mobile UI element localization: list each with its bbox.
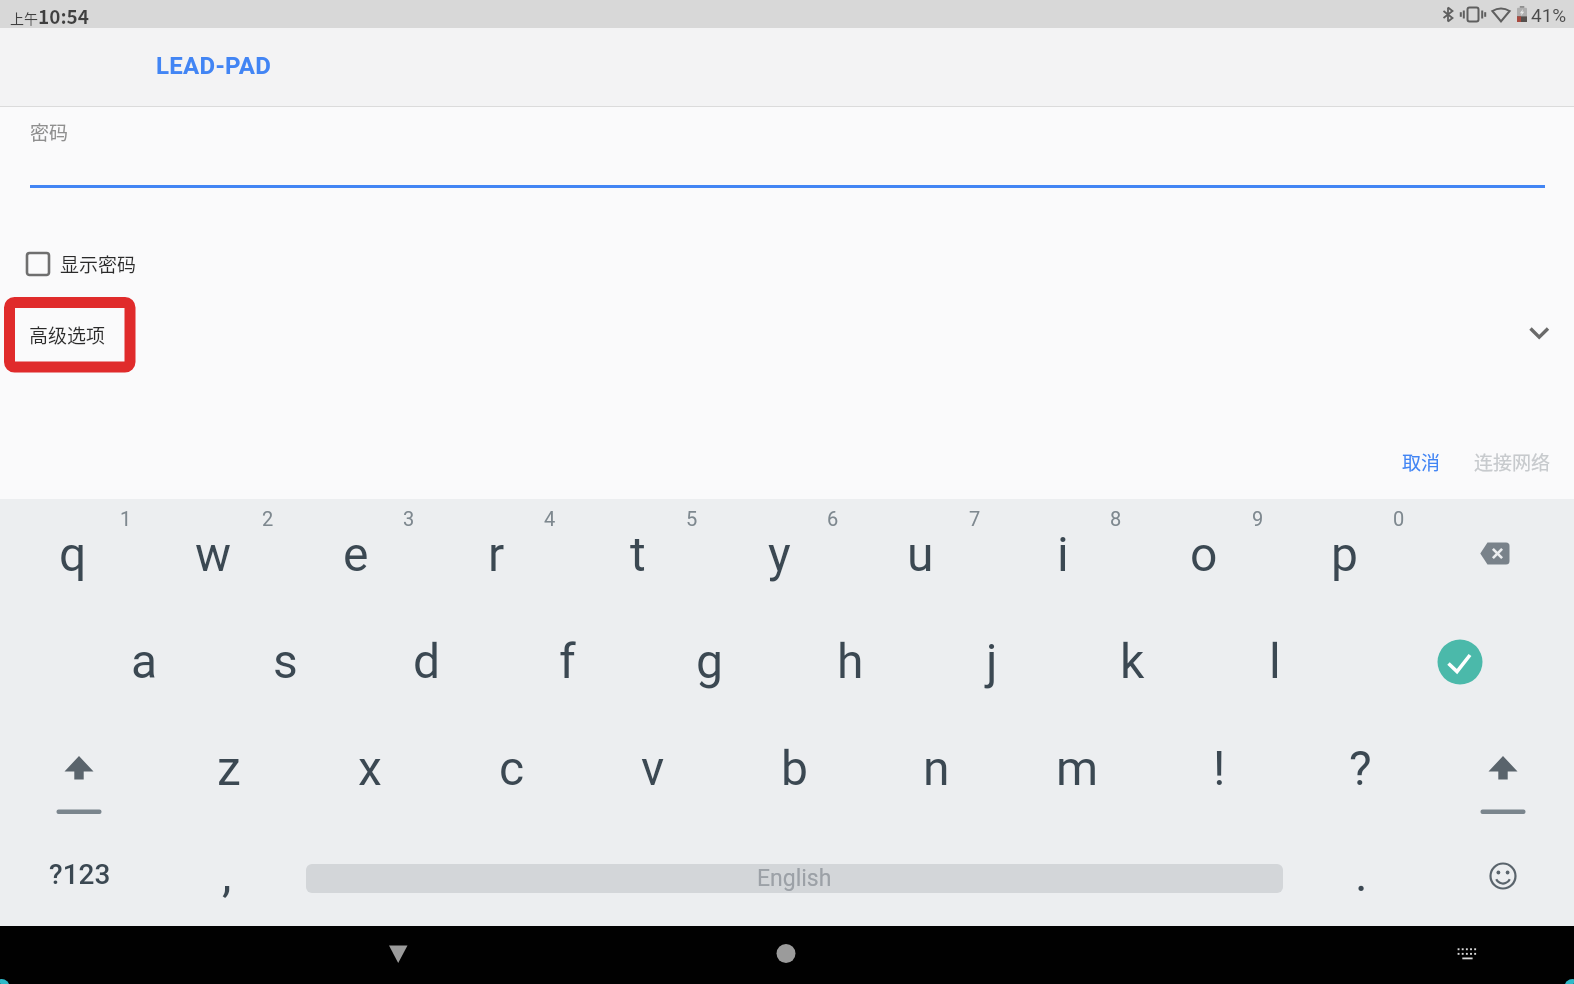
button[interactable]: m xyxy=(1007,714,1148,822)
staticText: LEAD-PAD xyxy=(156,52,272,80)
staticText: x xyxy=(358,740,382,796)
button[interactable] xyxy=(1420,500,1570,607)
button[interactable]: ! xyxy=(1149,714,1290,822)
staticText: 高级选项 xyxy=(29,321,106,349)
button[interactable]: . xyxy=(1296,822,1426,926)
staticText: English xyxy=(757,865,832,892)
button[interactable] xyxy=(1432,822,1574,926)
button[interactable]: 高级选项 xyxy=(29,321,106,349)
button[interactable]: i xyxy=(992,500,1133,607)
staticText: 6 xyxy=(827,507,839,530)
staticText: 0 xyxy=(1393,507,1405,530)
button[interactable]: English xyxy=(306,822,1283,926)
button[interactable]: 显示密码 xyxy=(27,247,157,281)
button[interactable]: u xyxy=(850,500,991,607)
button[interactable]: s xyxy=(215,607,356,714)
button[interactable]: , xyxy=(162,822,292,926)
button[interactable]: k xyxy=(1062,607,1203,714)
staticText: 密码 xyxy=(30,118,69,146)
button[interactable]: o xyxy=(1133,500,1274,607)
button[interactable]: a xyxy=(74,607,215,714)
button[interactable]: y xyxy=(709,500,850,607)
staticText: d xyxy=(413,633,441,689)
staticText: . xyxy=(1355,846,1368,902)
staticText: g xyxy=(696,633,723,689)
staticText: c xyxy=(499,740,525,796)
button[interactable]: q xyxy=(2,500,143,607)
button[interactable]: j xyxy=(921,607,1062,714)
button[interactable]: r xyxy=(426,500,567,607)
staticText: 5 xyxy=(686,507,698,530)
staticText: 8 xyxy=(1110,507,1122,530)
staticText: i xyxy=(1057,526,1069,582)
staticText: m xyxy=(1056,740,1099,796)
staticText: f xyxy=(559,633,576,689)
button[interactable]: f xyxy=(497,607,638,714)
button[interactable]: z xyxy=(158,714,299,822)
button[interactable] xyxy=(4,714,154,822)
staticText: 取消 xyxy=(1402,448,1441,476)
staticText: p xyxy=(1331,526,1358,582)
button[interactable]: n xyxy=(866,714,1007,822)
staticText: o xyxy=(1190,526,1218,582)
staticText: 7 xyxy=(969,507,981,530)
staticText: t xyxy=(630,526,646,582)
button[interactable]: d xyxy=(356,607,497,714)
button[interactable]: w xyxy=(143,500,284,607)
button[interactable] xyxy=(1385,607,1535,714)
button[interactable]: v xyxy=(582,714,723,822)
button[interactable]: b xyxy=(724,714,865,822)
button[interactable]: 取消 xyxy=(1387,441,1455,483)
staticText: a xyxy=(131,633,158,689)
staticText: ?123 xyxy=(49,858,111,891)
button[interactable] xyxy=(1432,714,1574,822)
staticText: y xyxy=(768,526,791,582)
button[interactable]: ?123 xyxy=(5,822,155,926)
button[interactable]: e xyxy=(285,500,426,607)
staticText: s xyxy=(273,633,298,689)
staticText: w xyxy=(195,526,232,582)
staticText: ? xyxy=(1349,740,1372,796)
staticText: v xyxy=(641,740,665,796)
button[interactable]: c xyxy=(441,714,582,822)
button[interactable] xyxy=(1437,930,1497,980)
button[interactable] xyxy=(1521,315,1557,351)
staticText: k xyxy=(1120,633,1145,689)
staticText: 41% xyxy=(1531,4,1567,26)
staticText: 9 xyxy=(1252,507,1264,530)
button[interactable]: ? xyxy=(1290,714,1431,822)
button[interactable]: p xyxy=(1274,500,1415,607)
staticText: 连接网络 xyxy=(1474,448,1551,476)
staticText: r xyxy=(488,526,505,582)
staticText: q xyxy=(59,526,87,582)
button[interactable]: g xyxy=(639,607,780,714)
staticText: 显示密码 xyxy=(60,250,137,278)
button[interactable]: t xyxy=(567,500,708,607)
staticText: ! xyxy=(1213,740,1226,796)
button[interactable]: l xyxy=(1204,607,1345,714)
staticText: b xyxy=(781,740,808,796)
staticText: u xyxy=(907,526,934,582)
staticText: 2 xyxy=(262,507,274,530)
button[interactable] xyxy=(368,930,428,980)
button[interactable]: 连接网络 xyxy=(1471,441,1553,483)
button[interactable] xyxy=(756,930,816,980)
staticText: e xyxy=(343,526,369,582)
button[interactable]: x xyxy=(299,714,440,822)
staticText: 1 xyxy=(120,507,132,530)
staticText: 上午10:54 xyxy=(10,2,90,30)
staticText: 3 xyxy=(403,507,415,530)
staticText: 4 xyxy=(544,507,556,530)
staticText: j xyxy=(986,633,998,689)
staticText: n xyxy=(923,740,950,796)
button[interactable]: h xyxy=(780,607,921,714)
staticText: h xyxy=(837,633,864,689)
staticText: z xyxy=(217,740,241,796)
staticText: l xyxy=(1269,633,1281,689)
staticText: , xyxy=(222,846,232,902)
